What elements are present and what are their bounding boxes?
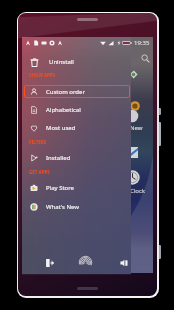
button[interactable]: Alphabetical	[24, 103, 130, 116]
staticText: 19:35	[134, 39, 150, 47]
button[interactable]: Back	[42, 255, 58, 271]
button[interactable]: Custom order	[24, 85, 130, 98]
button[interactable]: Home	[77, 254, 94, 271]
button[interactable]: Uninstall	[24, 55, 94, 69]
button[interactable]: Search	[138, 51, 152, 65]
staticText: FILTERS	[29, 139, 47, 145]
staticText: GET APPS	[29, 169, 50, 175]
staticText: Clock	[130, 187, 146, 195]
staticText: Installed	[46, 154, 71, 162]
button[interactable]: Installed	[24, 151, 130, 164]
button[interactable]: What's New	[24, 200, 130, 213]
staticText: New	[130, 124, 143, 132]
staticText: Most used	[46, 124, 76, 132]
button[interactable]: Play Store	[24, 181, 130, 194]
staticText: Custom order	[46, 88, 85, 96]
staticText: Alphabetical	[46, 106, 81, 114]
staticText: Uninstall	[49, 58, 74, 66]
button[interactable]: Most used	[24, 121, 130, 134]
button[interactable]: Volume	[116, 255, 132, 271]
staticText: Play Store	[46, 184, 74, 192]
staticText: What's New	[46, 203, 80, 211]
staticText: SHOW APPS	[29, 72, 56, 78]
